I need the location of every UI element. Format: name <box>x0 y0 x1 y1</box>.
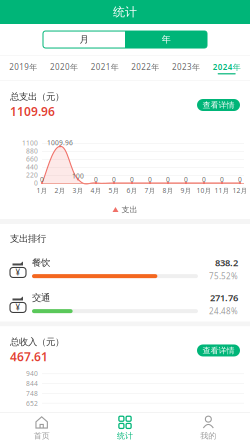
staticText: 我的 <box>200 431 216 441</box>
staticText: 2022年 <box>131 62 159 72</box>
staticText: 3月 <box>72 186 83 195</box>
staticText: 2020年 <box>50 62 78 72</box>
button[interactable]: 2019年 <box>3 55 44 80</box>
staticText: 2019年 <box>9 62 37 72</box>
staticText: 1009.96 <box>47 138 73 147</box>
staticText: 6月 <box>126 186 137 195</box>
button[interactable]: 2024年 <box>206 55 247 80</box>
staticText: 75.52% <box>209 271 238 281</box>
button[interactable]: 我的 <box>167 412 250 444</box>
staticText: 2021年 <box>91 62 119 72</box>
staticText: 1100 <box>22 139 38 147</box>
staticText: 0 <box>130 175 134 184</box>
staticText: 1月 <box>36 186 47 195</box>
staticText: 271.76 <box>210 291 238 304</box>
staticText: 660 <box>26 155 38 163</box>
staticText: 220 <box>26 171 38 179</box>
staticText: 0 <box>40 175 44 184</box>
staticText: 总收入（元） <box>10 336 64 348</box>
button[interactable]: ¥ <box>0 251 250 286</box>
staticText: 467.61 <box>10 349 48 365</box>
staticText: 0 <box>112 175 116 184</box>
staticText: 总支出（元） <box>10 91 64 102</box>
button[interactable]: 2023年 <box>166 55 206 80</box>
staticText: 12月 <box>232 186 247 195</box>
staticText: 844 <box>26 379 38 388</box>
staticText: 交通 <box>32 292 50 303</box>
staticText: 0 <box>238 175 242 184</box>
button[interactable]: 统计 <box>83 412 167 444</box>
staticText: ¥ <box>15 267 20 278</box>
staticText: 0 <box>220 175 224 184</box>
button[interactable]: 年 <box>125 31 207 48</box>
button[interactable]: 月 <box>43 31 125 48</box>
staticText: 100 <box>72 171 84 180</box>
staticText: 0 <box>166 175 170 184</box>
button[interactable]: 查看详情 <box>197 344 240 356</box>
staticText: 0 <box>202 175 206 184</box>
staticText: 支出排行 <box>10 233 46 244</box>
staticText: 0 <box>184 175 188 184</box>
staticText: 2023年 <box>172 62 200 72</box>
staticText: 24.48% <box>209 306 238 316</box>
staticText: 9月 <box>180 186 191 195</box>
staticText: 0 <box>94 175 98 184</box>
staticText: 支出 <box>121 205 137 214</box>
button[interactable]: 查看详情 <box>197 99 240 111</box>
staticText: 440 <box>26 163 38 171</box>
button[interactable]: 2021年 <box>84 55 125 80</box>
staticText: 2月 <box>54 186 65 195</box>
staticText: 2024年 <box>213 62 241 72</box>
staticText: 餐饮 <box>32 257 50 268</box>
staticText: 11月 <box>214 186 229 195</box>
staticText: 5月 <box>108 186 119 195</box>
staticText: 统计 <box>117 431 133 441</box>
staticText: 统计 <box>113 5 137 19</box>
staticText: 10月 <box>196 186 211 195</box>
staticText: ¥ <box>15 302 20 313</box>
staticText: 1109.96 <box>10 103 55 119</box>
staticText: 880 <box>26 147 38 155</box>
staticText: 7月 <box>144 186 155 195</box>
staticText: 8月 <box>162 186 173 195</box>
staticText: 0 <box>148 175 152 184</box>
button[interactable]: 2020年 <box>44 55 84 80</box>
staticText: 748 <box>26 389 38 398</box>
staticText: 652 <box>26 399 38 408</box>
button[interactable]: 首页 <box>0 412 83 444</box>
staticText: 月 <box>79 34 88 45</box>
staticText: 查看详情 <box>202 100 234 110</box>
staticText: 首页 <box>34 431 50 441</box>
staticText: 查看详情 <box>202 346 234 355</box>
button[interactable]: 2022年 <box>125 55 166 80</box>
button[interactable]: ¥ <box>0 286 250 321</box>
staticText: 年 <box>161 34 170 45</box>
staticText: 4月 <box>90 186 101 195</box>
staticText: 838.2 <box>215 256 238 269</box>
staticText: 940 <box>26 369 38 378</box>
staticText: 0 <box>34 179 38 187</box>
